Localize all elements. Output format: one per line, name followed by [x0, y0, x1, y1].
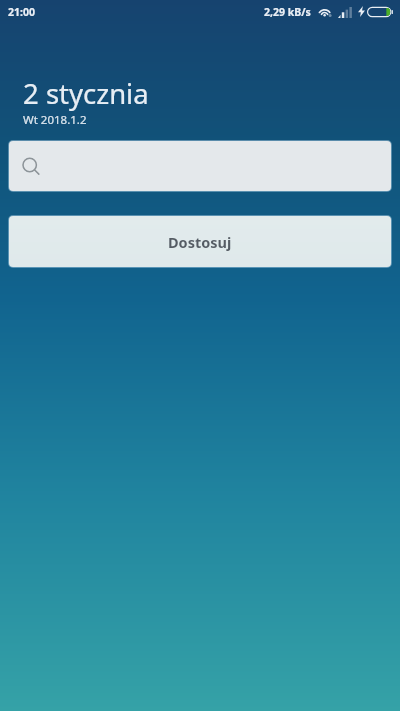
button[interactable]: Dostosuj	[9, 216, 391, 267]
staticText: 21:00	[8, 5, 35, 19]
staticText: 2,29 kB/s	[264, 5, 311, 19]
button[interactable]: Szukaj	[9, 141, 391, 191]
staticText: Dostosuj	[168, 232, 232, 252]
staticText: 2 stycznia	[23, 75, 149, 112]
staticText: Wt 2018.1.2	[23, 112, 87, 128]
